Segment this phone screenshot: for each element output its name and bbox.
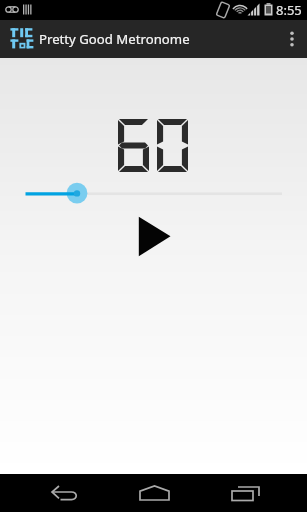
button[interactable]: Back — [30, 474, 102, 512]
staticText: 8:55 — [276, 1, 302, 19]
button[interactable]: More options — [277, 20, 307, 58]
button[interactable]: Recent apps — [209, 474, 281, 512]
button[interactable]: Play — [133, 211, 175, 261]
button[interactable]: Home — [118, 474, 190, 512]
staticText: Pretty Good Metronome — [39, 30, 190, 48]
